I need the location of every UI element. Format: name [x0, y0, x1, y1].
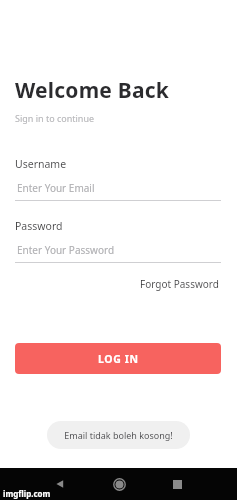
staticText: Username — [15, 157, 67, 171]
staticText: Password — [15, 219, 63, 233]
staticText: Welcome Back — [15, 76, 169, 105]
button[interactable]: Enter Your Email — [15, 181, 221, 201]
staticText: Forgot Password — [140, 277, 219, 291]
staticText: Email tidak boleh kosong! — [64, 429, 173, 441]
staticText: imgflip.com — [3, 488, 51, 499]
staticText: Sign in to continue — [15, 112, 95, 124]
button[interactable]: Recent apps — [165, 472, 189, 496]
button[interactable]: Home — [107, 472, 131, 496]
staticText: Enter Your Email — [17, 181, 95, 195]
button[interactable]: Enter Your Password — [15, 243, 221, 263]
button[interactable]: Forgot Password — [138, 275, 221, 293]
button[interactable]: Back — [48, 472, 72, 496]
button[interactable]: LOG IN — [15, 343, 221, 374]
staticText: LOG IN — [98, 352, 139, 366]
staticText: Enter Your Password — [17, 243, 115, 257]
